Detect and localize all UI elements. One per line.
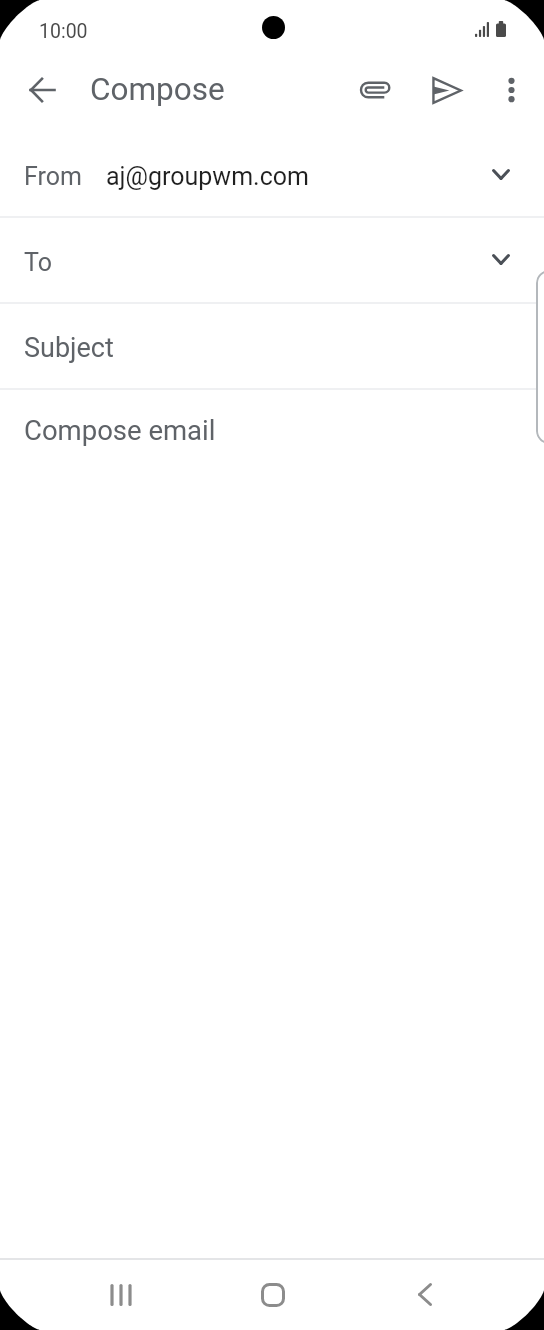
button[interactable]: Send [423, 66, 471, 114]
button[interactable]: To [0, 217, 544, 302]
button[interactable]: Home [242, 1264, 304, 1326]
button[interactable]: Attach file [351, 66, 399, 114]
staticText: 10:00 [39, 20, 88, 43]
button[interactable]: Subject [0, 303, 544, 388]
staticText: From [24, 162, 82, 191]
button[interactable]: Back [18, 66, 66, 114]
staticText: To [24, 248, 52, 277]
staticText: Subject [24, 332, 114, 364]
button[interactable]: Compose email [0, 389, 544, 469]
staticText: Compose [90, 71, 225, 108]
button[interactable]: More options [487, 66, 535, 114]
button[interactable]: From [0, 133, 544, 216]
staticText: aj@groupwm.com [106, 162, 309, 191]
button[interactable]: Back [394, 1263, 456, 1325]
button[interactable]: Recent apps [90, 1264, 152, 1326]
staticText: Compose email [24, 414, 216, 446]
